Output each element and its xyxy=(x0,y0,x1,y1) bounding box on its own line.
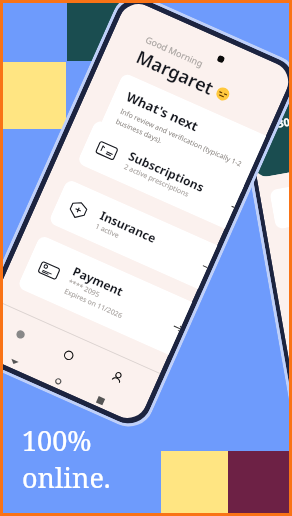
staticText: Expires on 11/2026 xyxy=(62,286,124,321)
staticText: online. xyxy=(22,459,111,496)
button[interactable]: Home xyxy=(0,314,40,354)
staticText: 2 active prescriptions xyxy=(122,162,190,200)
staticText: Good Morning xyxy=(144,33,205,69)
staticText: Margaret xyxy=(132,44,217,101)
staticText: 12:30 xyxy=(261,114,292,133)
staticText: 100% xyxy=(22,422,92,459)
staticText: What's next xyxy=(124,87,201,135)
button[interactable]: Profile xyxy=(97,357,137,397)
button[interactable]: Insurance xyxy=(48,179,217,289)
staticText: Info review and verification (typically … xyxy=(114,107,243,179)
button[interactable]: What's next xyxy=(98,72,266,193)
button[interactable]: Subscriptions xyxy=(77,119,244,229)
staticText: Payment xyxy=(71,263,126,299)
button[interactable]: Pharmacy xyxy=(49,335,88,375)
staticText: 1 active xyxy=(94,221,120,241)
staticText: **** 2095 xyxy=(66,277,102,300)
button[interactable]: Payment xyxy=(17,234,192,355)
staticText: Subscriptions xyxy=(126,147,207,195)
staticText: Insurance xyxy=(98,207,159,246)
